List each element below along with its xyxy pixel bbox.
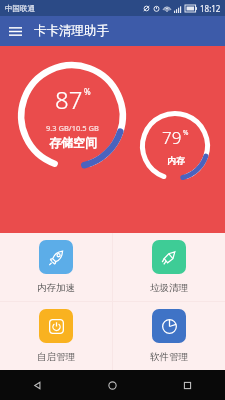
button[interactable]: 软件管理 <box>113 302 225 370</box>
button[interactable]: Back <box>0 370 75 400</box>
button[interactable]: 内存加速 <box>0 233 112 301</box>
staticText: 垃圾清理 <box>150 282 188 294</box>
button[interactable]: 自启管理 <box>0 302 112 370</box>
button[interactable]: Menu <box>0 16 30 46</box>
staticText: 软件管理 <box>150 351 188 363</box>
staticText: 9.3 GB/10.5 GB <box>46 123 99 133</box>
button[interactable]: 内存 79% <box>140 111 210 181</box>
button[interactable]: Home <box>75 370 150 400</box>
staticText: 87 <box>55 83 83 116</box>
staticText: 自启管理 <box>37 351 75 363</box>
staticText: 中国联通 <box>5 4 35 13</box>
button[interactable]: Recents <box>150 370 225 400</box>
staticText: 存储空间 <box>49 135 97 150</box>
staticText: % <box>183 128 189 137</box>
button[interactable]: 存储空间 87% <box>18 62 126 170</box>
staticText: 内存加速 <box>37 282 75 294</box>
button[interactable]: 垃圾清理 <box>113 233 225 301</box>
staticText: 18:12 <box>200 3 221 14</box>
staticText: 内存 <box>167 155 185 166</box>
staticText: 79 <box>162 126 182 149</box>
staticText: 卡卡清理助手 <box>34 23 109 39</box>
staticText: % <box>84 86 91 97</box>
